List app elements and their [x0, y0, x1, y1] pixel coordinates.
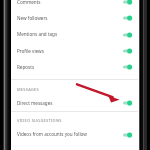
button[interactable]: Toggle — [123, 13, 132, 23]
button[interactable]: Toggle — [123, 30, 132, 40]
staticText: Direct messages — [17, 100, 53, 106]
staticText: MESSAGES — [17, 87, 40, 92]
button[interactable] — [0, 126, 150, 142]
button[interactable] — [0, 43, 150, 59]
staticText: Videos from accounts you follow — [17, 131, 87, 137]
button[interactable]: Toggle — [123, 62, 132, 72]
button[interactable]: Toggle — [123, 130, 132, 140]
button[interactable] — [0, 26, 150, 42]
button[interactable]: Toggle — [123, 0, 132, 7]
staticText: Mentions and tags — [17, 31, 58, 37]
button[interactable]: Toggle — [123, 46, 132, 56]
button[interactable]: Toggle — [123, 98, 132, 108]
button[interactable] — [0, 59, 150, 75]
staticText: Comments — [17, 0, 41, 5]
button[interactable] — [0, 0, 150, 10]
staticText: Profile views — [17, 48, 44, 54]
button[interactable] — [0, 95, 150, 111]
staticText: New followers — [17, 15, 48, 21]
button[interactable] — [0, 10, 150, 26]
staticText: VIDEO SUGGESTIONS — [17, 118, 62, 123]
staticText: Reposts — [17, 64, 35, 70]
